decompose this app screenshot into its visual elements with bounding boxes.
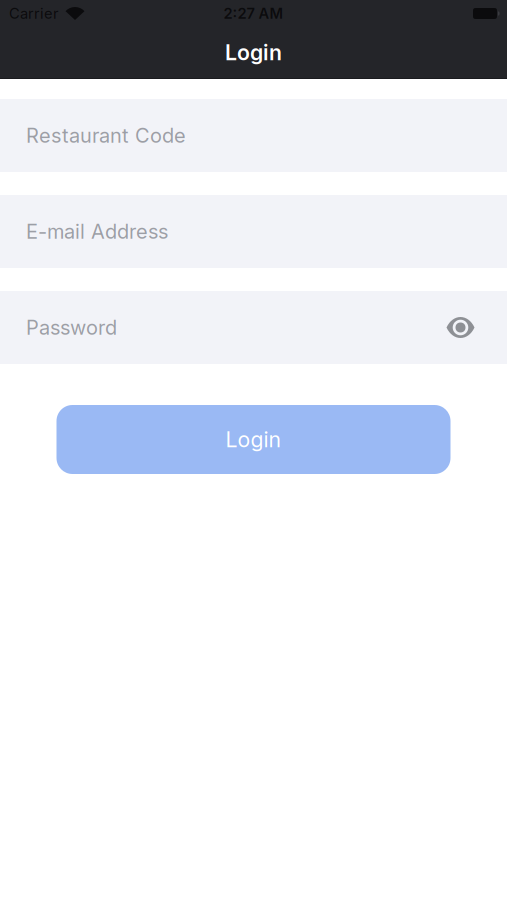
staticText: 2:27 AM [223, 5, 283, 22]
staticText: Login [225, 427, 281, 452]
staticText: Login [225, 40, 282, 65]
staticText: Password [26, 316, 117, 339]
staticText: Restaurant Code [26, 124, 186, 147]
staticText: E-mail Address [26, 220, 168, 243]
button[interactable]: Password [0, 291, 428, 364]
button[interactable]: Show password [428, 291, 507, 364]
button[interactable]: Restaurant Code [0, 99, 507, 172]
button[interactable]: Login [56, 405, 450, 474]
staticText: Carrier [9, 5, 59, 22]
button[interactable]: E-mail Address [0, 195, 507, 268]
